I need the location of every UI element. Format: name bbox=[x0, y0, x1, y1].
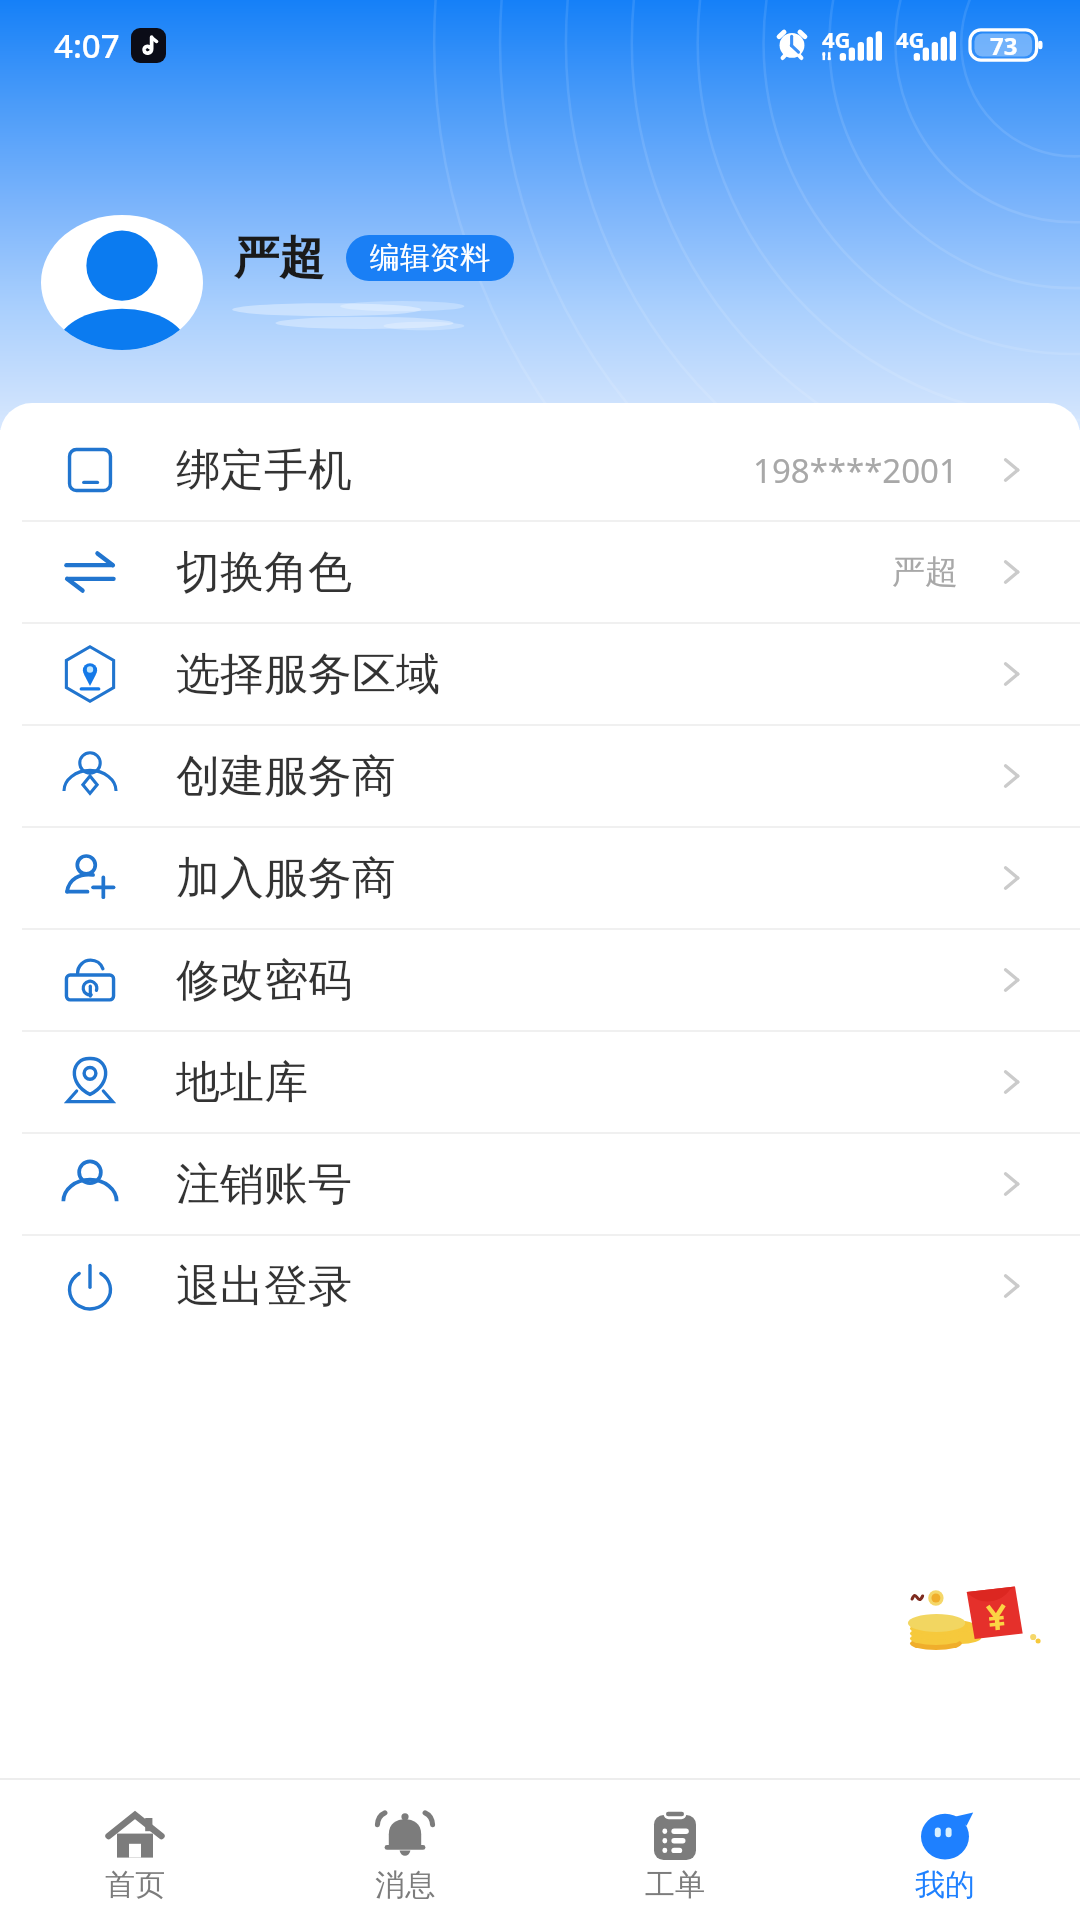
button[interactable]: 创建服务商 bbox=[0, 726, 1080, 826]
button[interactable]: 切换角色 bbox=[0, 522, 1080, 622]
button[interactable]: 选择服务区域 bbox=[0, 624, 1080, 724]
button[interactable]: Profile photo bbox=[41, 215, 203, 350]
button[interactable]: 首页 bbox=[0, 1780, 270, 1920]
staticText: 切换角色 bbox=[176, 545, 352, 600]
button[interactable]: 消息 bbox=[270, 1780, 540, 1920]
staticText: 198****2001 bbox=[753, 448, 958, 493]
staticText: 4:07 bbox=[54, 23, 120, 68]
staticText: 修改密码 bbox=[176, 953, 352, 1008]
button[interactable]: 加入服务商 bbox=[0, 828, 1080, 928]
staticText: 4G bbox=[896, 24, 925, 54]
staticText: 编辑资料 bbox=[370, 239, 490, 277]
button[interactable]: 退出登录 bbox=[0, 1236, 1080, 1336]
staticText: 首页 bbox=[105, 1866, 165, 1904]
staticText: 地址库 bbox=[176, 1055, 308, 1110]
button[interactable]: 绑定手机 bbox=[0, 420, 1080, 520]
staticText: 消息 bbox=[375, 1866, 435, 1904]
staticText: 我的 bbox=[915, 1866, 975, 1904]
button[interactable]: 地址库 bbox=[0, 1032, 1080, 1132]
staticText: 选择服务区域 bbox=[176, 647, 440, 702]
button[interactable]: 修改密码 bbox=[0, 930, 1080, 1030]
staticText: 严超 bbox=[892, 551, 958, 593]
button[interactable]: 注销账号 bbox=[0, 1134, 1080, 1234]
staticText: 4G bbox=[822, 24, 851, 54]
staticText: 退出登录 bbox=[176, 1259, 352, 1314]
staticText: 73 bbox=[990, 29, 1018, 62]
staticText: 创建服务商 bbox=[176, 749, 396, 804]
button[interactable]: 我的 bbox=[810, 1780, 1080, 1920]
staticText: 加入服务商 bbox=[176, 851, 396, 906]
staticText: 严超 bbox=[234, 230, 324, 287]
staticText: 注销账号 bbox=[176, 1157, 352, 1212]
button[interactable]: 编辑资料 bbox=[346, 235, 514, 281]
button[interactable]: 工单 bbox=[540, 1780, 810, 1920]
staticText: 工单 bbox=[645, 1866, 705, 1904]
staticText: 绑定手机 bbox=[176, 443, 352, 498]
